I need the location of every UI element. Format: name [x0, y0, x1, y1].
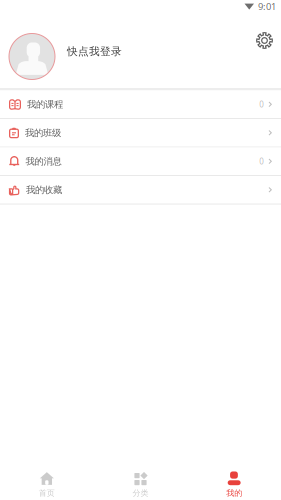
staticText: 首页 — [39, 488, 55, 498]
staticText: 0 — [259, 156, 264, 167]
button[interactable]: 首页 — [0, 458, 94, 500]
staticText: 我的消息 — [25, 156, 61, 167]
staticText: 9:01 — [258, 0, 276, 13]
button[interactable]: 我的消息 — [0, 147, 281, 176]
staticText: 我的班级 — [25, 127, 61, 139]
button[interactable]: 分类 — [94, 458, 187, 500]
button[interactable]: 快点我登录 — [63, 39, 126, 64]
staticText: 快点我登录 — [67, 45, 122, 58]
staticText: 分类 — [132, 488, 148, 498]
button[interactable]: 我的班级 — [0, 119, 281, 147]
button[interactable]: 我的 — [187, 458, 281, 500]
staticText: 我的收藏 — [26, 184, 62, 196]
button[interactable]: 我的收藏 — [0, 176, 281, 204]
staticText: 我的课程 — [27, 99, 63, 110]
button[interactable]: Settings — [249, 25, 280, 56]
staticText: 0 — [259, 99, 264, 110]
button[interactable]: 我的课程 — [0, 90, 281, 119]
staticText: 我的 — [226, 488, 242, 498]
